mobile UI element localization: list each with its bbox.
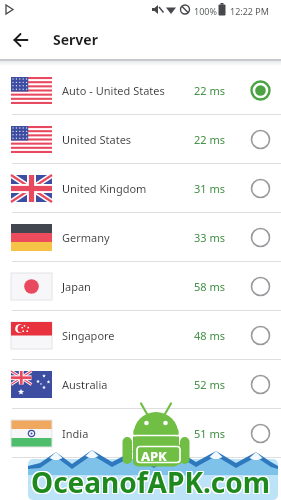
staticText: OceanofAPK.com [31,464,271,500]
button[interactable]: Australia [0,360,281,409]
staticText: OceanofAPK.com [32,462,272,500]
staticText: 52 ms [194,377,225,392]
button[interactable]: United States [0,115,281,164]
staticText: India [62,426,89,441]
button[interactable] [3,22,39,58]
staticText: Singapore [62,328,115,343]
staticText: OceanofAPK.com [30,464,270,500]
staticText: OceanofAPK.com [31,463,271,500]
staticText: United Kingdom [62,181,147,196]
button[interactable]: Germany [0,213,281,262]
staticText: Australia [62,377,108,392]
staticText: 22 ms [194,132,225,147]
staticText: OceanofAPK.com [30,462,270,500]
staticText: OceanofAPK.com [32,464,272,500]
staticText: OceanofAPK.com [30,463,270,500]
button[interactable]: Singapore [0,311,281,360]
staticText: Server [53,30,98,49]
button[interactable]: India [0,409,281,458]
staticText: 100% [194,5,217,17]
button[interactable]: United Kingdom [0,164,281,213]
staticText: Auto - United States [62,83,165,98]
staticText: Japan [62,279,91,294]
staticText: OceanofAPK.com [31,462,271,500]
staticText: 31 ms [194,181,225,196]
staticText: 12:22 PM [230,5,269,17]
staticText: Germany [62,230,110,245]
staticText: 48 ms [194,328,225,343]
staticText: OceanofAPK.com [32,463,272,500]
staticText: 58 ms [194,279,225,294]
staticText: United States [62,132,132,147]
button[interactable]: Japan [0,262,281,311]
staticText: 51 ms [194,426,225,441]
staticText: 22 ms [194,83,225,98]
staticText: APK [141,447,167,465]
button[interactable]: Auto - United States [0,66,281,115]
staticText: 33 ms [194,230,225,245]
